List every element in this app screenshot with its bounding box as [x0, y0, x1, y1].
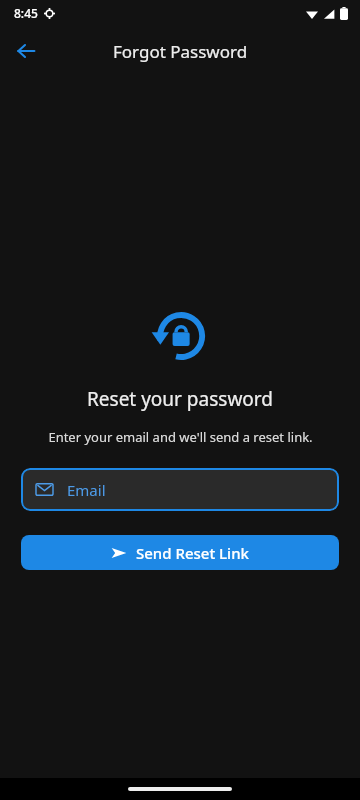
- staticText: 8:45: [14, 5, 38, 21]
- staticText: Send Reset Link: [136, 543, 249, 563]
- button[interactable]: Email: [21, 468, 339, 511]
- button[interactable]: Back: [6, 31, 46, 71]
- staticText: Reset your password: [87, 386, 273, 412]
- button[interactable]: Send Reset Link: [21, 535, 339, 570]
- staticText: Email: [67, 480, 106, 500]
- staticText: Enter your email and we'll send a reset …: [48, 428, 313, 446]
- staticText: Forgot Password: [113, 40, 248, 63]
